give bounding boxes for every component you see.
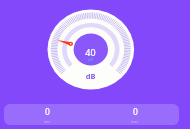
button[interactable]: 0: [4, 104, 91, 125]
staticText: dB: [70, 71, 111, 81]
staticText: dB: [70, 57, 111, 62]
button[interactable]: 0: [91, 104, 179, 125]
staticText: min: [44, 119, 51, 124]
staticText: 0: [45, 106, 50, 118]
staticText: 40: [70, 46, 111, 58]
staticText: max: [131, 119, 139, 124]
staticText: 0: [133, 106, 138, 118]
